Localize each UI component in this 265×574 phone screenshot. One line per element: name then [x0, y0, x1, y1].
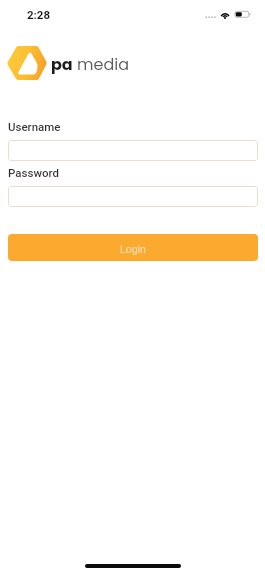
button[interactable]: Username input field [8, 140, 258, 161]
button[interactable]: Password input field [8, 186, 258, 207]
staticText: Username [8, 120, 61, 133]
staticText: media [77, 53, 129, 75]
staticText: Login [120, 243, 146, 255]
staticText: 2:28 [27, 8, 51, 21]
button[interactable]: Login [8, 234, 258, 261]
staticText: pa [51, 53, 73, 75]
staticText: Password [8, 166, 59, 179]
